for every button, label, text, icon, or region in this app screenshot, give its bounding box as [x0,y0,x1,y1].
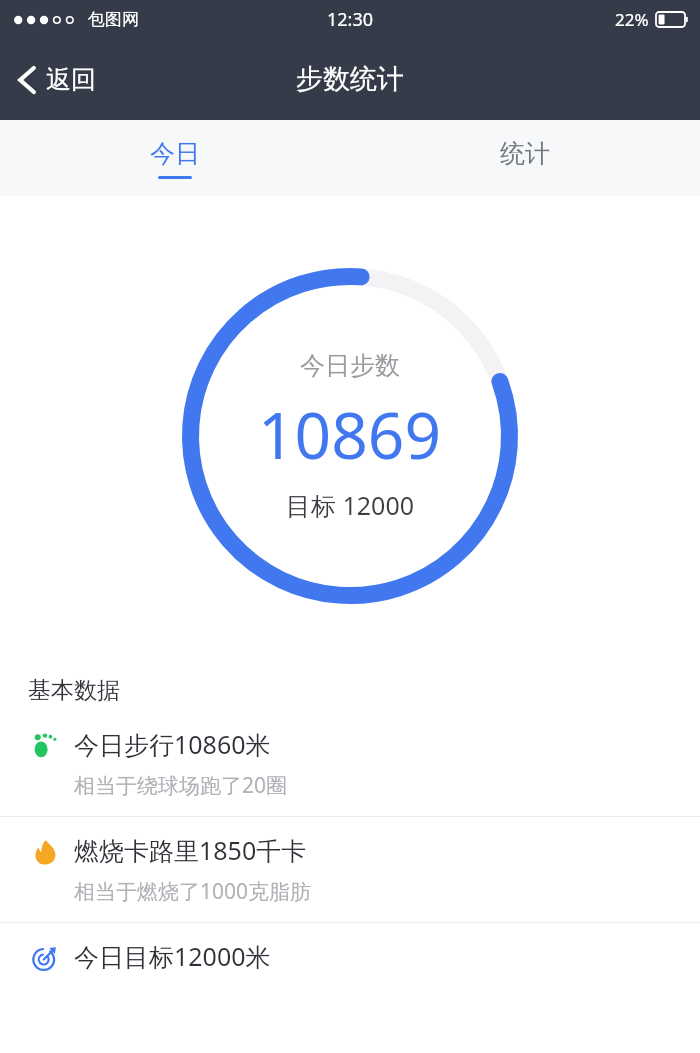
button[interactable]: 统计 [350,120,700,196]
staticText: 相当于燃烧了1000克脂肪 [74,877,312,906]
other: Goal [32,945,58,971]
staticText: 返回 [46,64,96,95]
staticText: 10869 [258,391,442,478]
staticText: 今日步行10860米 [74,727,271,761]
staticText: 包图网 [88,9,139,30]
staticText: 12:30 [327,7,374,32]
staticText: 22% [615,8,649,31]
other: Steps [32,733,58,759]
staticText: 今日步数 [300,350,400,381]
staticText: 燃烧卡路里1850千卡 [74,833,307,867]
staticText: 今日目标12000米 [74,939,271,973]
staticText: 基本数据 [28,676,120,705]
button[interactable]: 返回 [0,54,114,105]
button[interactable]: Goal [0,923,700,989]
staticText: 步数统计 [296,62,404,96]
button[interactable]: 今日 [0,120,350,196]
staticText: 相当于绕球场跑了20圈 [74,771,288,800]
other: Calories [32,839,58,865]
button[interactable]: Calories [0,817,700,922]
staticText: 今日 [150,138,200,169]
staticText: 统计 [500,138,550,169]
button[interactable]: Steps [0,711,700,816]
staticText: 目标 12000 [286,488,415,522]
